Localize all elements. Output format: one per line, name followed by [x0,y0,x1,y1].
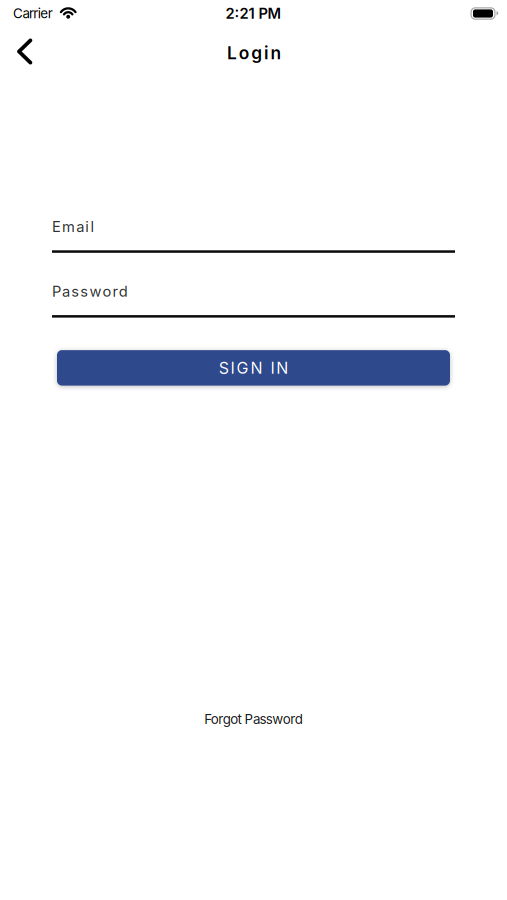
staticText: G [236,358,248,377]
staticText: Password [52,283,128,300]
button[interactable]: Forgot Password [204,711,303,727]
staticText: Carrier [13,6,53,21]
button[interactable]: Back [0,26,32,76]
staticText: N [250,358,262,377]
button[interactable]: Email [52,218,455,253]
staticText: Forgot Password [204,711,303,727]
staticText: 2:21 PM [225,5,281,22]
button[interactable]: Password [52,283,455,318]
staticText: I [231,358,235,377]
staticText: I [270,358,274,377]
staticText: N [276,358,288,377]
staticText: S [219,358,229,377]
staticText: Login [226,43,281,63]
staticText: Email [52,218,94,235]
button[interactable]: S [57,350,450,386]
